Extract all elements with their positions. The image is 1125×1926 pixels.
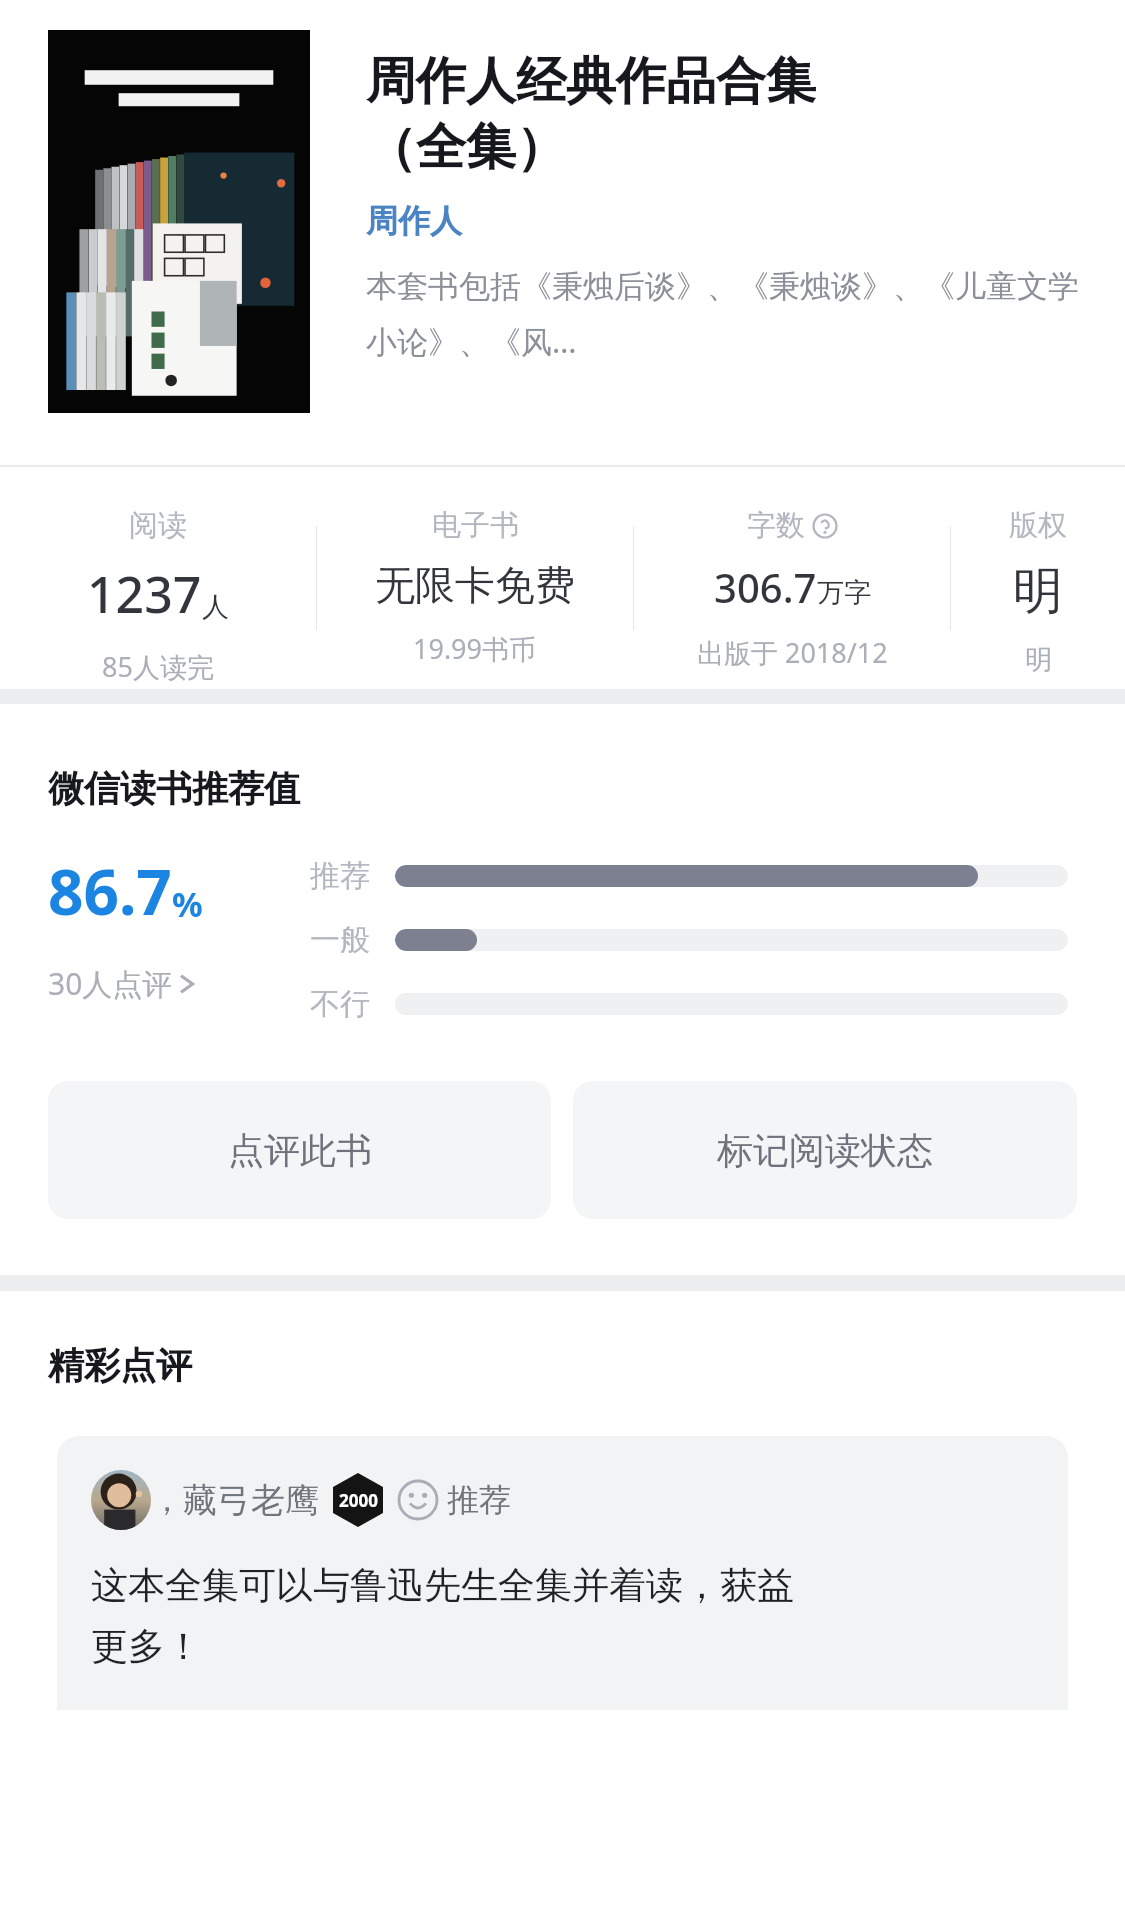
staticText: 精彩点评: [48, 1343, 192, 1388]
staticText: 30人点评: [48, 963, 173, 1004]
staticText: 推荐: [310, 857, 395, 895]
staticText: 字数: [747, 507, 805, 544]
staticText: 微信读书推荐值: [48, 766, 300, 811]
staticText: 阅读: [129, 507, 187, 544]
staticText: 85人读完: [102, 648, 214, 685]
staticText: 人: [202, 590, 229, 624]
button[interactable]: User avatar: [57, 1436, 1068, 1710]
staticText: 无限卡免费: [375, 560, 575, 610]
staticText: 点评此书: [228, 1128, 372, 1173]
button[interactable]: 周作人: [366, 201, 462, 241]
button[interactable]: User avatar: [91, 1470, 151, 1530]
staticText: 藏弓老鹰: [183, 1479, 319, 1522]
staticText: 不行: [310, 985, 395, 1023]
staticText: 出版于 2018/12: [697, 634, 888, 671]
staticText: 86.7: [48, 849, 172, 933]
button[interactable]: Book cover: [48, 30, 310, 413]
staticText: 1237: [87, 560, 202, 628]
staticText: 19.99书币: [413, 630, 537, 667]
button[interactable]: 电子书: [317, 467, 633, 689]
button[interactable]: 版权: [951, 467, 1125, 689]
staticText: 一般: [310, 921, 395, 959]
button[interactable]: 字数: [634, 467, 950, 689]
staticText: %: [172, 881, 203, 927]
staticText: 电子书: [432, 507, 519, 544]
staticText: 明: [1013, 560, 1063, 623]
staticText: 明: [1025, 643, 1052, 677]
staticText: ，: [151, 1480, 183, 1520]
staticText: 这本全集可以与鲁迅先生全集并着读，获益 更多！: [91, 1562, 794, 1670]
staticText: 2000: [339, 1489, 378, 1512]
button[interactable]: 阅读: [0, 467, 316, 689]
staticText: 标记阅读状态: [717, 1128, 933, 1173]
staticText: 306.7: [714, 560, 817, 614]
staticText: 本套书包括《秉烛后谈》、《秉烛谈》、《儿童文学小论》、《风…: [366, 267, 1107, 363]
staticText: 推荐: [447, 1480, 511, 1520]
button[interactable]: 点评此书: [48, 1081, 551, 1219]
staticText: 周作人经典作品合集 （全集）: [366, 50, 816, 179]
staticText: 万字: [817, 576, 871, 610]
button[interactable]: 标记阅读状态: [573, 1081, 1077, 1219]
staticText: 版权: [1009, 507, 1067, 544]
button[interactable]: 86.7: [48, 849, 310, 1004]
